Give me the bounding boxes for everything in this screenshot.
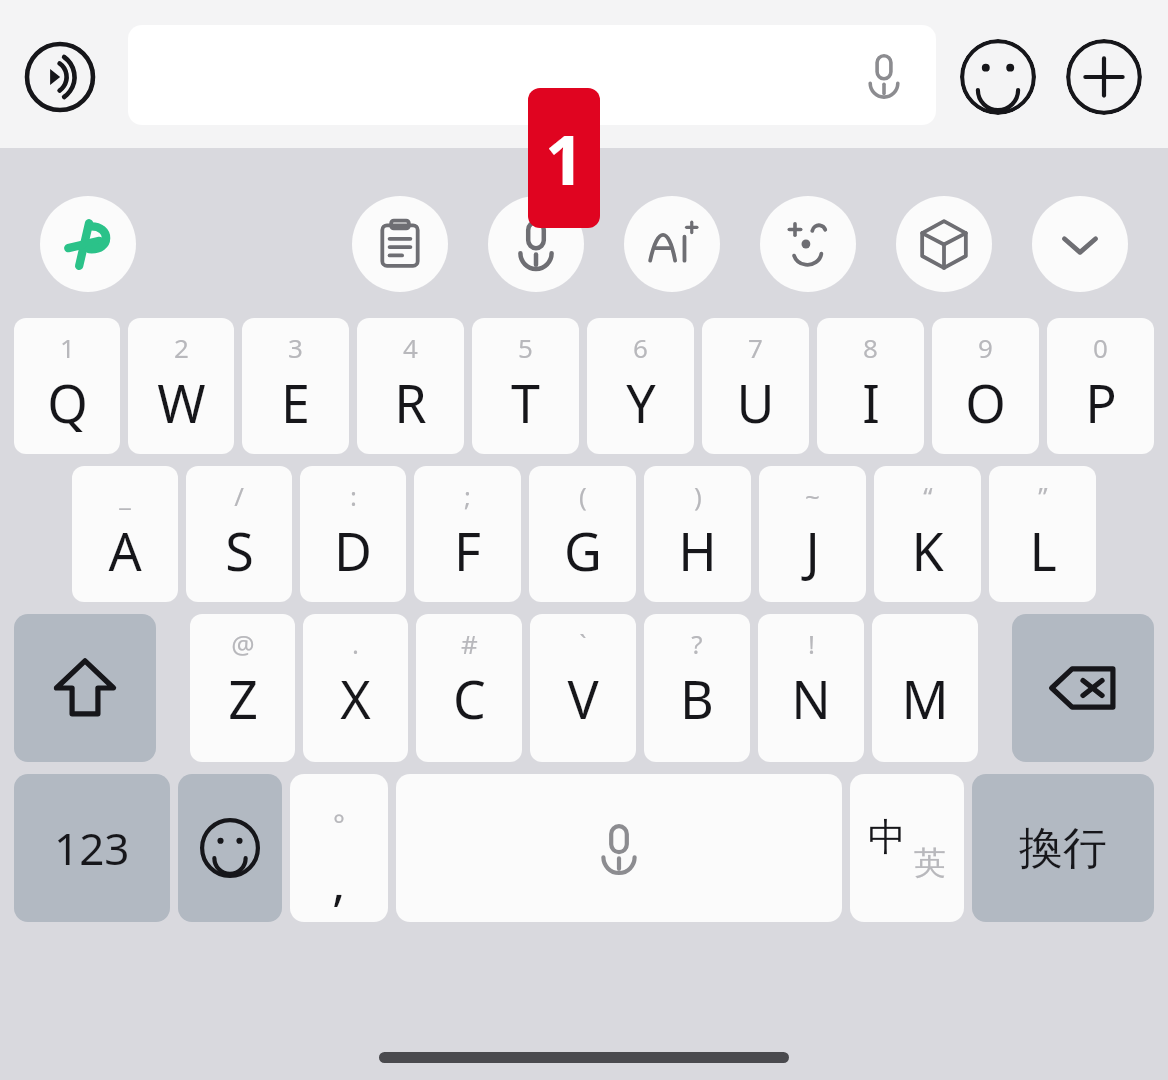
button[interactable]: AI writing	[624, 196, 720, 292]
staticText: Q	[47, 367, 88, 438]
staticText: U	[736, 367, 775, 438]
staticText: _	[119, 478, 131, 513]
button[interactable]: /	[186, 466, 292, 602]
button[interactable]: 1	[14, 318, 120, 454]
staticText: H	[678, 515, 717, 586]
staticText: I	[862, 367, 880, 438]
button[interactable]: !	[758, 614, 864, 762]
button[interactable]: 換行	[972, 774, 1154, 922]
staticText: A	[108, 515, 142, 586]
staticText: !	[808, 626, 815, 661]
button[interactable]: Space	[396, 774, 842, 922]
button[interactable]: Emoji keyboard	[178, 774, 282, 922]
staticText: 6	[633, 330, 648, 365]
staticText: 1	[545, 112, 584, 205]
button[interactable]: 123	[14, 774, 170, 922]
staticText: O	[965, 367, 1006, 438]
staticText: @	[231, 626, 255, 661]
staticText: °	[333, 804, 345, 842]
button[interactable]: `	[530, 614, 636, 762]
staticText: )	[694, 478, 702, 513]
button[interactable]: 5	[472, 318, 579, 454]
staticText: 123	[54, 818, 130, 878]
button[interactable]: .	[303, 614, 408, 762]
staticText: G	[564, 515, 602, 586]
staticText: B	[680, 663, 714, 734]
staticText: 5	[518, 330, 533, 365]
staticText: (	[579, 478, 587, 513]
button[interactable]: Emoji	[960, 39, 1036, 115]
button[interactable]: @	[190, 614, 295, 762]
staticText: 0	[1093, 330, 1108, 365]
staticText: 7	[748, 330, 763, 365]
staticText: X	[340, 663, 371, 734]
button[interactable]: Dictate	[128, 25, 936, 125]
button[interactable]: Assistant	[40, 196, 136, 292]
staticText: Y	[626, 367, 656, 438]
staticText: 9	[978, 330, 993, 365]
staticText: .	[352, 626, 359, 661]
staticText: 8	[863, 330, 878, 365]
staticText: W	[157, 367, 206, 438]
button[interactable]: Shift	[14, 614, 156, 762]
staticText: :	[350, 478, 357, 513]
button[interactable]: Clipboard	[352, 196, 448, 292]
button[interactable]: Stickers	[760, 196, 856, 292]
button[interactable]: 7	[702, 318, 809, 454]
staticText: ”	[1038, 478, 1048, 513]
staticText: ~	[805, 478, 820, 513]
staticText: ,	[332, 848, 346, 916]
staticText: N	[791, 663, 831, 734]
staticText: L	[1029, 515, 1057, 586]
staticText: 中	[868, 813, 906, 861]
staticText: 英	[914, 843, 946, 883]
staticText: D	[334, 515, 372, 586]
button[interactable]: Switch language	[850, 774, 964, 922]
button[interactable]: Voice input	[488, 196, 584, 292]
staticText: 換行	[1019, 821, 1107, 876]
staticText: ?	[691, 626, 703, 661]
button[interactable]: )	[644, 466, 751, 602]
button[interactable]: 6	[587, 318, 694, 454]
staticText: `	[579, 626, 587, 661]
button[interactable]: _	[72, 466, 178, 602]
button[interactable]: 9	[932, 318, 1039, 454]
staticText: 3	[288, 330, 303, 365]
button[interactable]: Add	[1066, 39, 1142, 115]
staticText: J	[805, 515, 820, 586]
staticText: K	[911, 515, 944, 586]
button[interactable]: °	[290, 774, 388, 922]
staticText: 1	[60, 330, 75, 365]
staticText: T	[511, 367, 540, 438]
staticText: #	[461, 626, 478, 661]
button[interactable]: Backspace	[1012, 614, 1154, 762]
button[interactable]: Voice typing	[24, 41, 96, 113]
button[interactable]: 0	[1047, 318, 1154, 454]
button[interactable]: Dictate	[856, 47, 912, 103]
button[interactable]: ”	[989, 466, 1096, 602]
staticText: C	[453, 663, 486, 734]
staticText: “	[923, 478, 933, 513]
button[interactable]: ;	[414, 466, 521, 602]
button[interactable]: 3D emoji	[896, 196, 992, 292]
staticText: M	[901, 663, 949, 734]
staticText: R	[394, 367, 427, 438]
button[interactable]: (	[529, 466, 636, 602]
button[interactable]: “	[874, 466, 981, 602]
button[interactable]: ?	[644, 614, 750, 762]
button[interactable]: M	[872, 614, 978, 762]
staticText: E	[281, 367, 310, 438]
staticText: 4	[403, 330, 418, 365]
button[interactable]: Collapse toolbar	[1032, 196, 1128, 292]
staticText: S	[225, 515, 254, 586]
button[interactable]: 8	[817, 318, 924, 454]
button[interactable]: :	[300, 466, 406, 602]
button[interactable]: 3	[242, 318, 349, 454]
button[interactable]: 2	[128, 318, 234, 454]
staticText: P	[1085, 367, 1117, 438]
button[interactable]: ~	[759, 466, 866, 602]
button[interactable]: 4	[357, 318, 464, 454]
staticText: /	[234, 478, 244, 513]
button[interactable]: #	[416, 614, 522, 762]
staticText: Z	[228, 663, 258, 734]
